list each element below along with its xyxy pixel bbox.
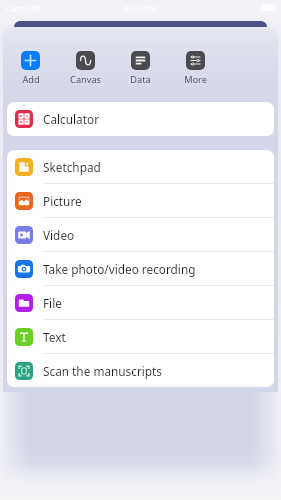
staticText: Sketchpad: [43, 159, 101, 175]
staticText: File: [43, 295, 62, 311]
button[interactable]: Data: [113, 51, 168, 86]
button[interactable]: Video: [7, 218, 274, 252]
staticText: Picture: [43, 193, 82, 209]
staticText: More: [184, 73, 207, 86]
staticText: Calculator: [43, 111, 100, 127]
staticText: Add: [22, 73, 40, 86]
button[interactable]: Canvas: [58, 51, 113, 86]
staticText: Text: [43, 329, 66, 345]
staticText: Scan the manuscripts: [43, 363, 163, 379]
button[interactable]: More: [168, 51, 223, 86]
button[interactable]: File: [7, 286, 274, 320]
button[interactable]: Sketchpad: [7, 150, 274, 184]
staticText: Canvas: [70, 73, 101, 86]
staticText: Video: [43, 227, 75, 243]
button[interactable]: Scan the manuscripts: [7, 354, 274, 387]
button[interactable]: Calculator: [7, 102, 274, 136]
staticText: Carrier: [5, 2, 36, 14]
staticText: Take photo/video recording: [43, 261, 196, 277]
button[interactable]: Add: [3, 51, 58, 86]
button[interactable]: Picture: [7, 184, 274, 218]
button[interactable]: Text: [7, 320, 274, 354]
staticText: 8:53 AM: [123, 2, 158, 14]
button[interactable]: Take photo/video recording: [7, 252, 274, 286]
staticText: Data: [130, 73, 151, 86]
